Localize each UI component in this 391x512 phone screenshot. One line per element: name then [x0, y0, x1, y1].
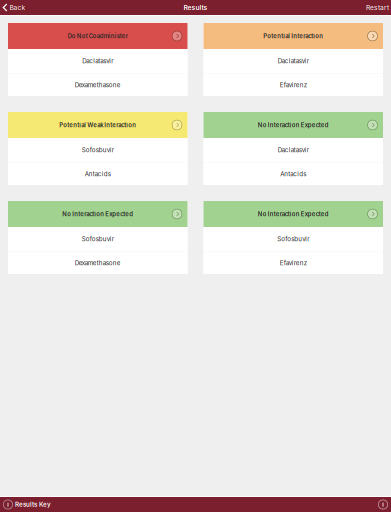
- button[interactable]: Potential Interaction: [203, 23, 383, 96]
- button[interactable]: Information: [372, 497, 391, 512]
- staticText: Results Key: [15, 501, 51, 508]
- staticText: Dexamethasone: [75, 259, 121, 267]
- staticText: No Interaction Expected: [258, 210, 329, 218]
- staticText: No Interaction Expected: [62, 210, 133, 218]
- staticText: Dexamethasone: [75, 81, 121, 89]
- staticText: Sofosbuvir: [277, 235, 309, 243]
- button[interactable]: Back: [0, 0, 28, 15]
- staticText: Efavirenz: [280, 81, 307, 89]
- staticText: Antacids: [280, 170, 306, 178]
- button[interactable]: Potential Weak Interaction: [8, 112, 187, 185]
- staticText: Sofosbuvir: [82, 235, 114, 243]
- staticText: Potential Weak Interaction: [59, 121, 136, 129]
- staticText: Do Not Coadminister: [68, 32, 128, 40]
- button[interactable]: Do Not Coadminister: [8, 23, 187, 96]
- staticText: Daclatasvir: [82, 57, 113, 65]
- staticText: Sofosbuvir: [82, 146, 114, 154]
- staticText: No Interaction Expected: [258, 121, 329, 129]
- staticText: Potential Interaction: [263, 32, 323, 40]
- staticText: Daclatasvir: [278, 57, 309, 65]
- staticText: Daclatasvir: [278, 146, 309, 154]
- button[interactable]: No Interaction Expected: [203, 201, 383, 274]
- staticText: Back: [9, 3, 25, 12]
- staticText: Antacids: [85, 170, 111, 178]
- button[interactable]: No Interaction Expected: [8, 201, 187, 274]
- staticText: Efavirenz: [280, 259, 307, 267]
- staticText: Results: [183, 3, 207, 12]
- button[interactable]: No Interaction Expected: [203, 112, 383, 185]
- button[interactable]: Results Key: [0, 497, 56, 512]
- staticText: Restart: [366, 3, 389, 12]
- button[interactable]: Restart: [362, 0, 391, 15]
